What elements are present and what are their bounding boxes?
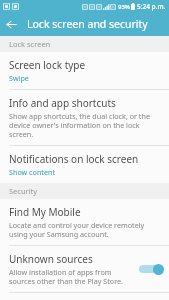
staticText: Info and app shortcuts [9, 96, 116, 110]
staticText: Unknown sources [9, 252, 93, 266]
button[interactable]: Notifications on lock screen [0, 146, 169, 183]
staticText: Show app shortcuts, the dual clock, or t… [9, 111, 164, 139]
button[interactable]: Info and app shortcuts [0, 90, 169, 145]
button[interactable]: Unknown sources [0, 246, 169, 292]
staticText: Notifications on lock screen [9, 152, 139, 166]
staticText: Security [9, 186, 38, 196]
staticText: Lock screen and security [27, 17, 148, 31]
staticText: Lock screen [9, 39, 51, 49]
staticText: Find My Mobile [9, 205, 81, 219]
staticText: Screen lock type [9, 58, 86, 72]
staticText: Allow installation of apps from sources … [9, 267, 133, 286]
button[interactable]: Screen lock type [0, 52, 169, 89]
button[interactable]: Back [0, 13, 22, 35]
staticText: 5:24 p.m. [137, 2, 166, 11]
button[interactable]: Find My Mobile [0, 199, 169, 245]
staticText: Swipe [9, 73, 29, 83]
staticText: Locate and control your device remotely … [9, 220, 164, 239]
button[interactable]: Unknown sources toggle [137, 262, 164, 276]
staticText: 93% [118, 3, 130, 11]
staticText: Show content [9, 167, 56, 177]
